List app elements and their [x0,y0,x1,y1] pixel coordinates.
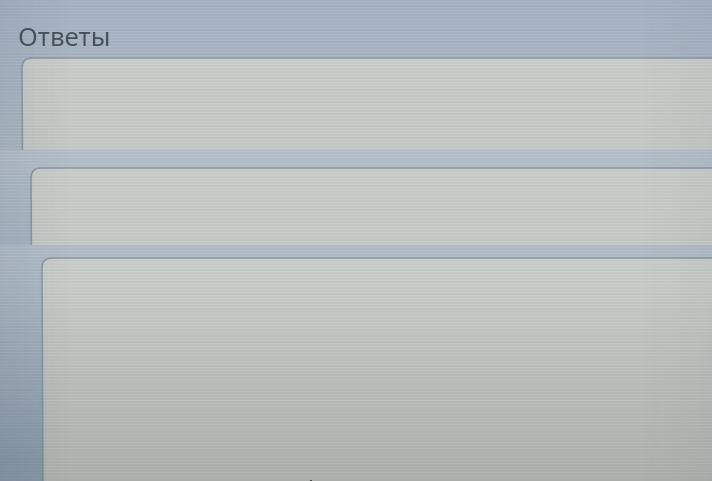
staticText: y = −x; y = 3x − 4 [59,388,301,430]
other: y = −x; y = 3x − 4 [59,388,301,430]
button[interactable]: y = −x; y = 3x − 4 [31,168,712,481]
staticText: y = 2x; y = 2x − 6 [50,278,291,320]
button[interactable]: y = 0,5x + 5; y = 1/2 x + 5 [42,258,712,481]
other: y = 2x; y = 2x − 6 [50,278,291,320]
button[interactable]: y = 2x; y = 2x − 6 [22,58,712,481]
button[interactable]: Ответы [16,16,113,55]
other: y = 0,5x + 5; y = 1/2 x + 5 [70,474,390,481]
staticText: 1 [306,474,316,481]
staticText: Ответы [18,18,111,53]
